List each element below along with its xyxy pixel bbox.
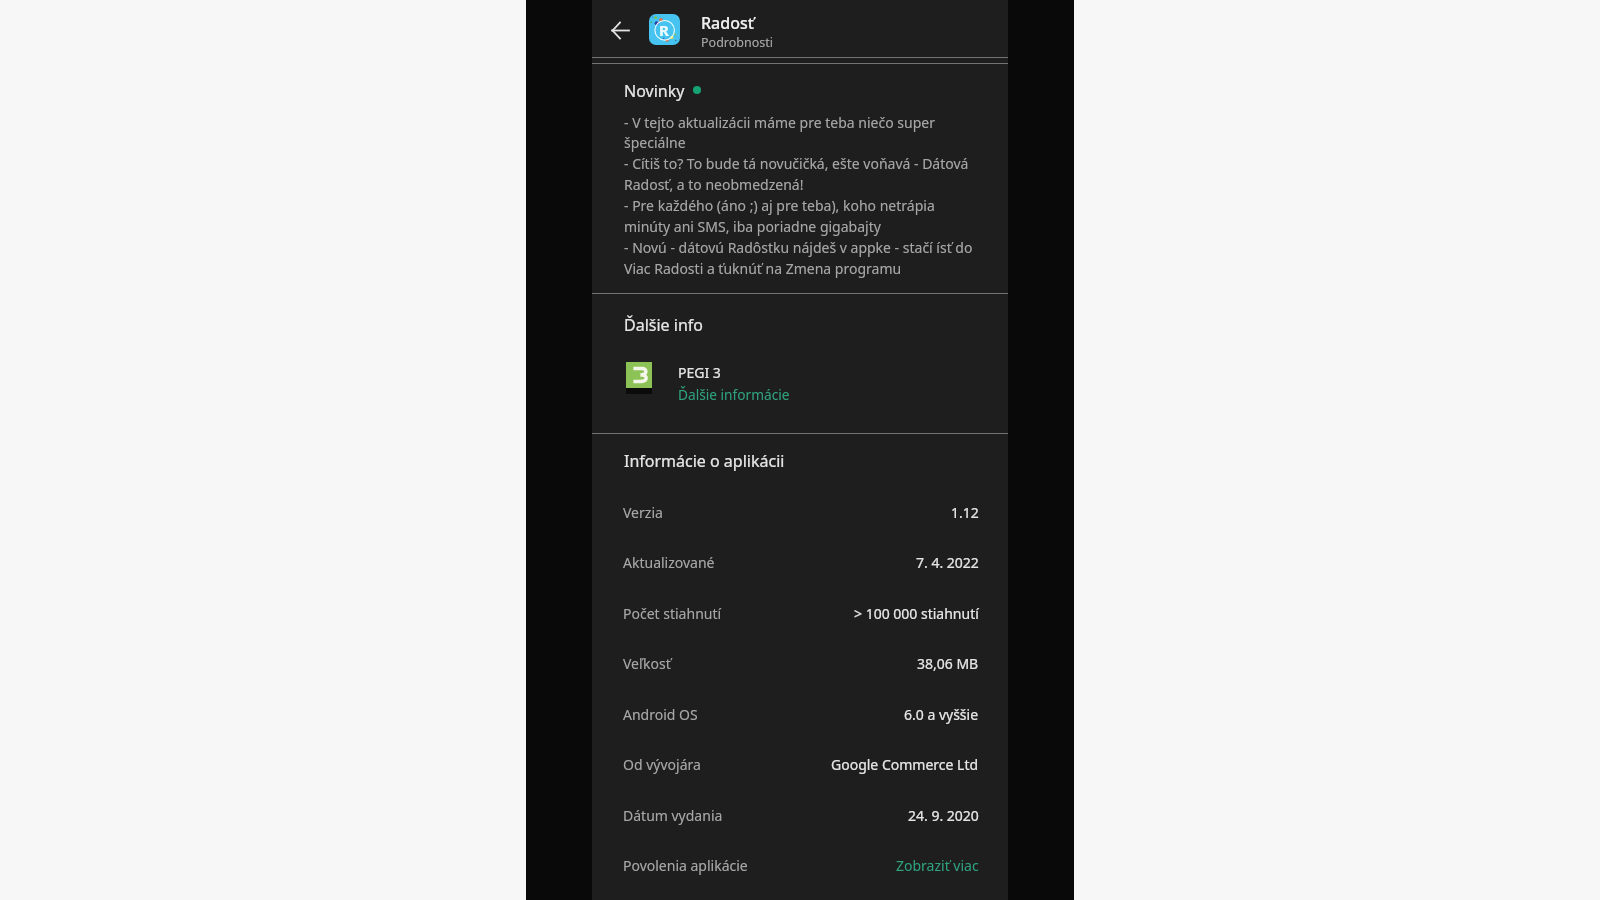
staticText: Počet stiahnutí [623, 604, 722, 623]
button[interactable]: PEGI 3 [592, 353, 1008, 405]
staticText: Ďalšie info [624, 314, 703, 336]
staticText: Povolenia aplikácie [623, 856, 748, 875]
staticText: Informácie o aplikácii [624, 450, 785, 472]
button[interactable]: Back [602, 12, 639, 49]
staticText: Ďalšie informácie [678, 385, 790, 404]
staticText: Veľkosť [623, 654, 671, 673]
button[interactable]: Povolenia aplikácie [592, 850, 1008, 880]
staticText: Verzia [623, 503, 663, 522]
staticText: Podrobnosti [701, 34, 773, 51]
staticText: Novinky [624, 80, 685, 102]
staticText: Android OS [623, 705, 698, 724]
staticText: Od vývojára [623, 755, 701, 774]
staticText: > 100 000 stiahnutí [854, 604, 979, 623]
staticText: Aktualizované [623, 553, 715, 572]
staticText: R [659, 20, 669, 40]
staticText: 38,06 MB [917, 654, 979, 673]
staticText: 7. 4. 2022 [916, 553, 979, 572]
staticText: 1.12 [951, 503, 979, 522]
staticText: 24. 9. 2020 [908, 806, 979, 825]
staticText: - V tejto aktualizácii máme pre teba nie… [624, 113, 977, 278]
staticText: Google Commerce Ltd [831, 755, 979, 774]
staticText: Dátum vydania [623, 806, 723, 825]
staticText: Zobraziť viac [896, 856, 979, 875]
staticText: PEGI 3 [678, 363, 721, 382]
staticText: 6.0 a vyššie [904, 705, 979, 724]
staticText: Radosť [701, 12, 754, 34]
